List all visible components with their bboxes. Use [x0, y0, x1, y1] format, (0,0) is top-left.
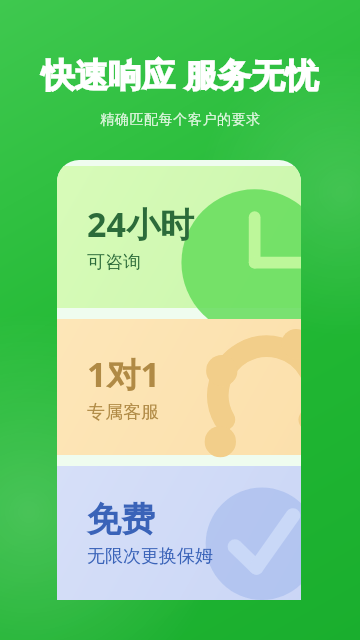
button[interactable]: Free replacement badge [57, 466, 301, 600]
staticText: 精确匹配每个客户的要求 [100, 111, 261, 129]
staticText: 24小时 [87, 201, 194, 247]
button[interactable]: 24 hour clock [57, 160, 301, 600]
staticText: 专属客服 [87, 401, 159, 424]
staticText: 免费 [87, 498, 155, 541]
staticText: 快速响应 服务无忧 [41, 52, 319, 97]
other: 24 hour clock [57, 166, 301, 308]
button[interactable]: 24 hour clock [57, 166, 301, 308]
button[interactable]: Customer service headset [57, 319, 301, 455]
other: Customer service headset [57, 319, 301, 455]
other: Free replacement badge [57, 466, 301, 600]
staticText: 无限次更换保姆 [87, 545, 213, 568]
staticText: 可咨询 [87, 251, 141, 274]
staticText: 1对1 [87, 351, 160, 397]
